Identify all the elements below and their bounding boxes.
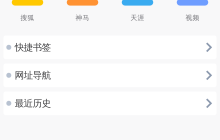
staticText: 天涯 [130,14,144,22]
button[interactable]: 网址导航 [3,63,216,87]
staticText: 神马 [75,14,89,22]
staticText: 网址导航 [15,70,51,81]
staticText: 最近历史 [15,98,51,109]
staticText: 搜狐 [20,14,34,22]
button[interactable]: 视频 [165,0,220,23]
staticText: 视频 [185,14,199,22]
button[interactable]: 搜狐 [0,0,55,23]
button[interactable]: 最近历史 [3,91,216,115]
button[interactable]: 快捷书签 [3,35,216,59]
button[interactable]: 神马 [55,0,110,23]
staticText: 快捷书签 [15,42,51,53]
button[interactable]: 天涯 [110,0,165,23]
